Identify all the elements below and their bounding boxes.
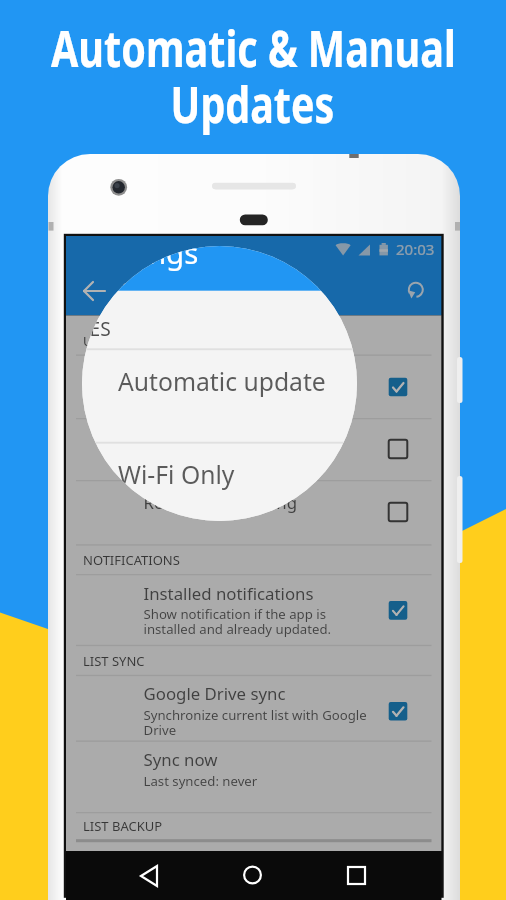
button[interactable]: Back (128, 856, 170, 896)
button[interactable] (66, 480, 442, 544)
button[interactable]: Navigate up (68, 270, 112, 314)
button[interactable] (66, 741, 442, 813)
button[interactable]: Refresh (394, 270, 438, 314)
button[interactable] (66, 418, 442, 480)
button[interactable]: Recent apps (336, 856, 378, 896)
button[interactable] (66, 355, 442, 419)
button[interactable] (66, 675, 442, 741)
button[interactable] (66, 574, 442, 645)
button[interactable]: Home (232, 856, 274, 896)
